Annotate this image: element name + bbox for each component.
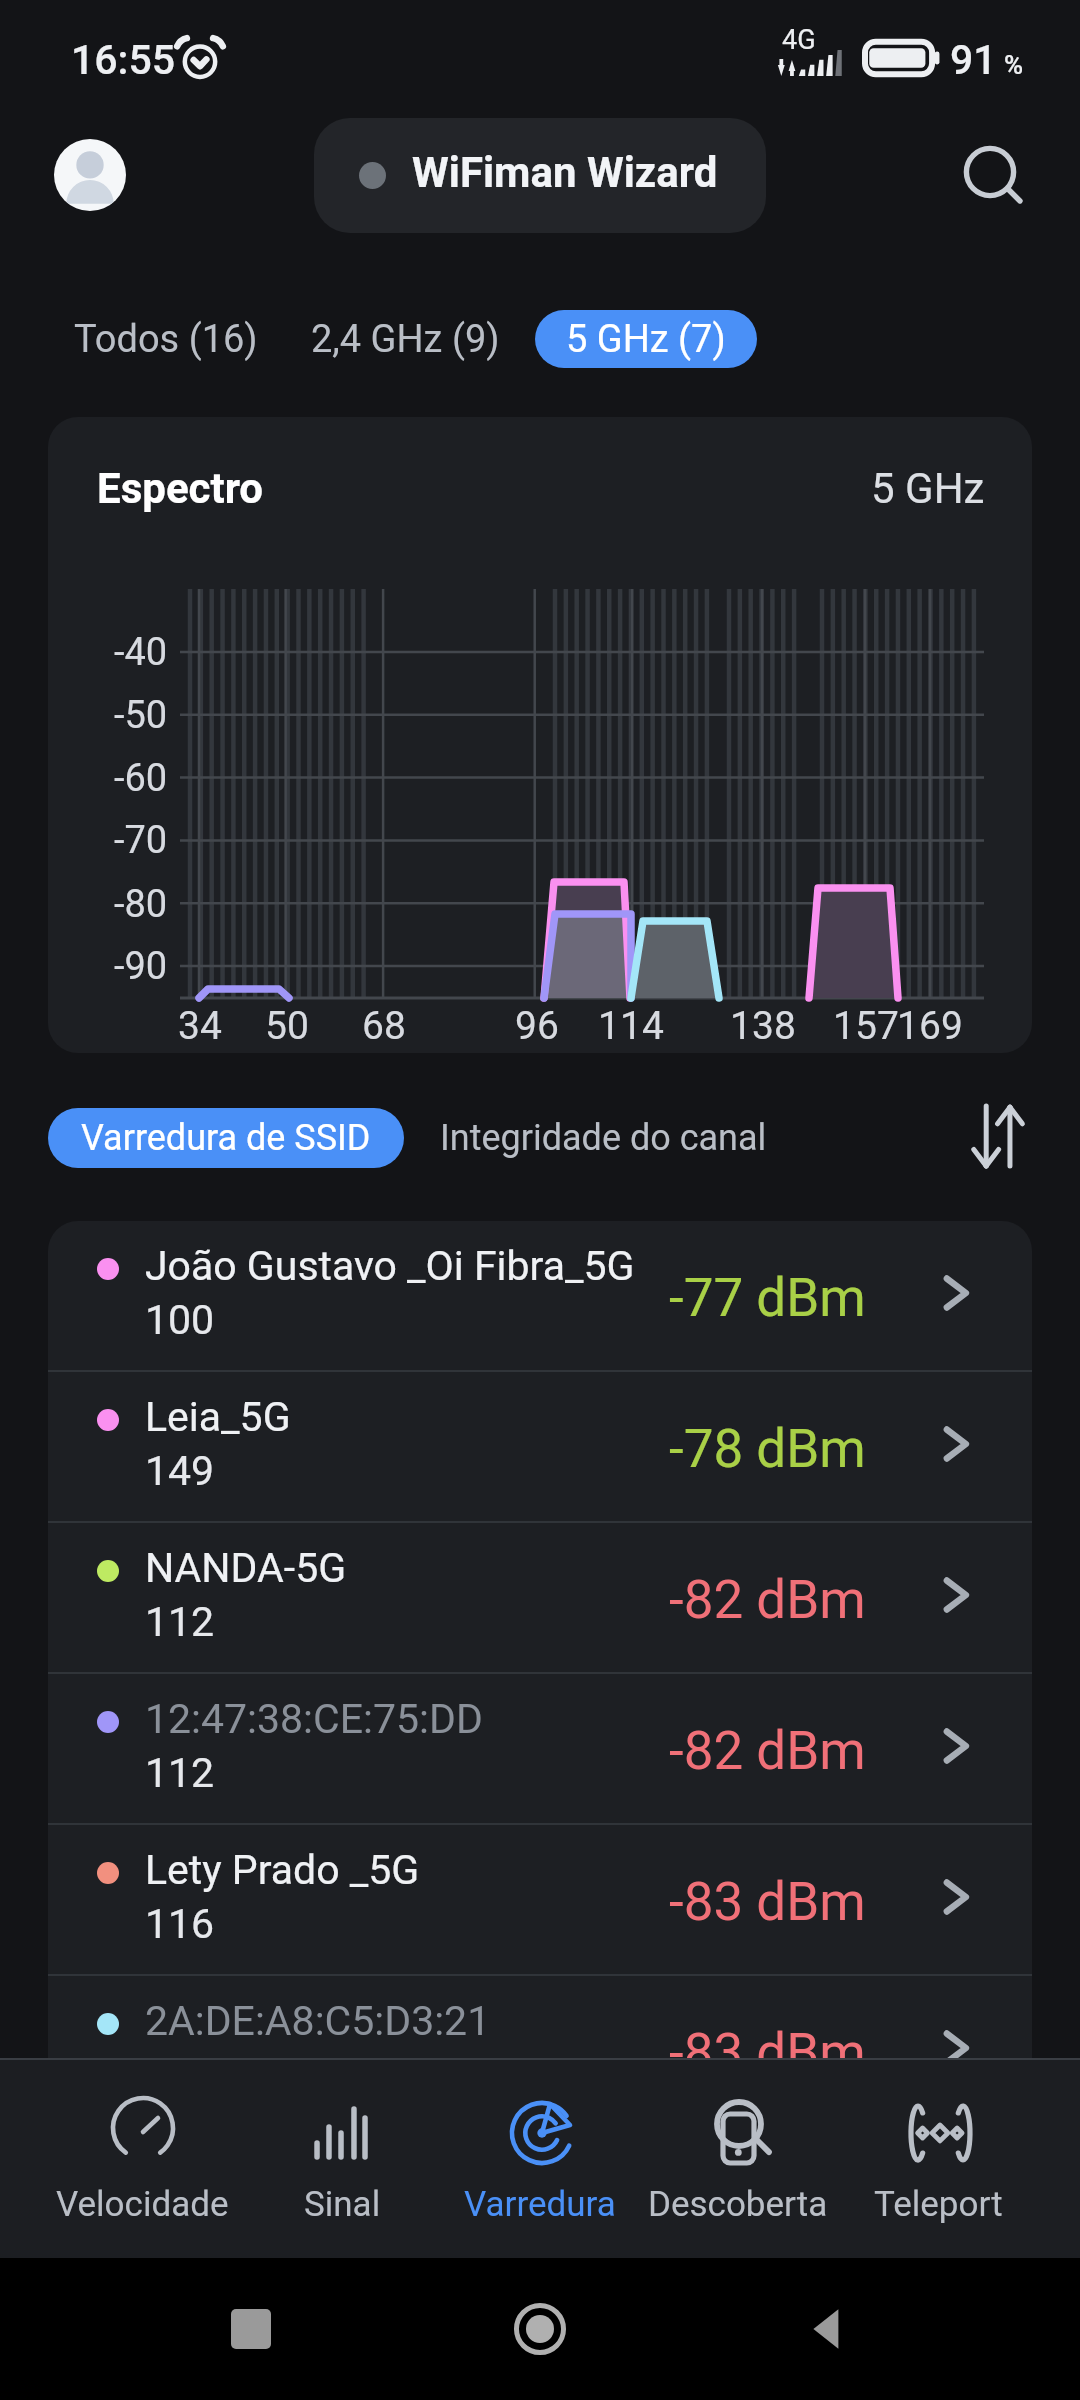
- staticText: 91: [950, 36, 997, 84]
- button[interactable]: João Gustavo _Oi Fibra_5G: [48, 1221, 1032, 1370]
- staticText: 100: [145, 1296, 215, 1344]
- staticText: 138: [703, 1003, 823, 1049]
- button[interactable]: 2A:DE:A8:C5:D3:21: [48, 1976, 1032, 2125]
- staticText: -60: [114, 756, 168, 801]
- staticText: -83 dBm: [669, 2022, 866, 2084]
- staticText: Descoberta: [648, 2184, 828, 2225]
- staticText: -90: [114, 944, 168, 989]
- staticText: 16:55: [71, 36, 176, 84]
- staticText: 112: [145, 1598, 215, 1646]
- button[interactable]: Lety Prado _5G: [48, 1825, 1032, 1974]
- button[interactable]: Back: [791, 2291, 867, 2367]
- button[interactable]: Varredura de SSID: [48, 1108, 404, 1168]
- staticText: -77 dBm: [669, 1267, 866, 1329]
- button[interactable]: 12:47:38:CE:75:DD: [48, 1674, 1032, 1823]
- staticText: -78 dBm: [669, 1418, 866, 1480]
- staticText: NANDA-5G: [145, 1544, 347, 1592]
- staticText: -82 dBm: [669, 1720, 866, 1782]
- staticText: 114: [571, 1003, 691, 1049]
- staticText: Varredura: [464, 2184, 616, 2225]
- staticText: 116: [145, 1900, 215, 1948]
- staticText: -83 dBm: [669, 1871, 866, 1933]
- button[interactable]: Todos (16): [56, 310, 275, 368]
- button[interactable]: Velocidade: [42, 2060, 242, 2258]
- button[interactable]: Sort: [940, 1093, 1026, 1179]
- button[interactable]: WiFiman Wizard: [314, 118, 766, 233]
- staticText: 4G: [782, 24, 816, 56]
- button[interactable]: Varredura: [440, 2060, 640, 2258]
- button[interactable]: Recents: [213, 2291, 289, 2367]
- staticText: 50: [227, 1003, 347, 1049]
- button[interactable]: Leia_5G: [48, 1372, 1032, 1521]
- staticText: Espectro: [97, 464, 264, 513]
- staticText: 12:47:38:CE:75:DD: [145, 1695, 483, 1743]
- staticText: 68: [324, 1003, 444, 1049]
- button[interactable]: 2,4 GHz (9): [285, 310, 525, 368]
- staticText: 112: [145, 1749, 215, 1797]
- staticText: Leia_5G: [145, 1393, 291, 1441]
- button[interactable]: Integridade do canal: [420, 1108, 786, 1168]
- button[interactable]: Profile: [54, 139, 126, 211]
- staticText: 5 GHz: [871, 464, 985, 513]
- button[interactable]: Descoberta: [638, 2060, 838, 2258]
- staticText: 2,4 GHz (9): [311, 317, 500, 362]
- button[interactable]: Teleport: [838, 2060, 1038, 2258]
- staticText: 96: [477, 1003, 597, 1049]
- staticText: Velocidade: [56, 2184, 229, 2225]
- staticText: -70: [114, 818, 168, 863]
- staticText: João Gustavo _Oi Fibra_5G: [145, 1242, 635, 1290]
- button[interactable]: Home: [502, 2291, 578, 2367]
- staticText: 5 GHz (7): [566, 317, 726, 362]
- button[interactable]: 5 GHz (7): [535, 310, 757, 368]
- button[interactable]: Search: [948, 130, 1038, 220]
- staticText: Teleport: [874, 2184, 1003, 2225]
- staticText: -82 dBm: [669, 1569, 866, 1631]
- staticText: 34: [140, 1003, 260, 1049]
- staticText: 149: [145, 1447, 215, 1495]
- staticText: 2A:DE:A8:C5:D3:21: [145, 1997, 491, 2045]
- button[interactable]: Sinal: [242, 2060, 442, 2258]
- staticText: Integridade do canal: [440, 1117, 767, 1159]
- staticText: -50: [114, 693, 168, 738]
- staticText: 157: [806, 1003, 926, 1049]
- staticText: -40: [114, 630, 168, 675]
- staticText: WiFiman Wizard: [412, 148, 718, 197]
- staticText: -80: [114, 882, 168, 927]
- staticText: Todos (16): [74, 317, 258, 362]
- staticText: %: [1004, 50, 1024, 80]
- staticText: Varredura de SSID: [81, 1117, 371, 1159]
- staticText: Lety Prado _5G: [145, 1846, 420, 1894]
- staticText: Sinal: [304, 2184, 381, 2225]
- staticText: 112: [145, 2051, 215, 2099]
- staticText: 169: [870, 1003, 990, 1049]
- button[interactable]: NANDA-5G: [48, 1523, 1032, 1672]
